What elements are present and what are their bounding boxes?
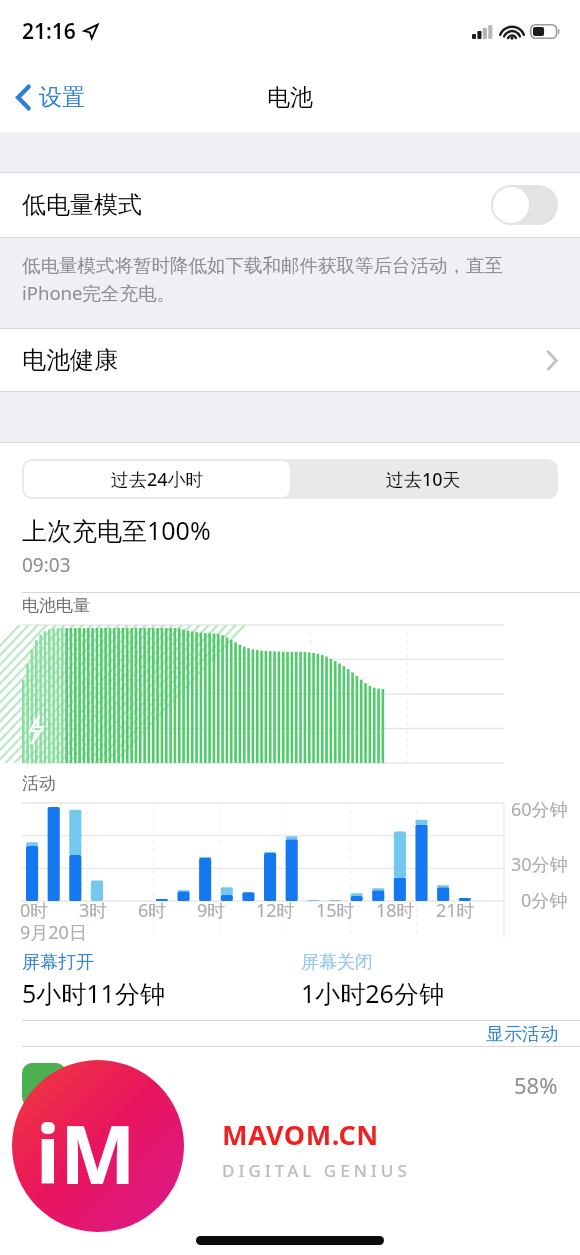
staticText: 活动	[22, 773, 56, 794]
staticText: 低电量模式将暂时降低如下载和邮件获取等后台活动，直至iPhone完全充电。	[22, 254, 532, 306]
staticText: 09:03	[22, 552, 71, 578]
staticText: iM	[36, 1098, 136, 1207]
staticText: 上次充电至100%	[22, 513, 211, 547]
button[interactable]: 低电量模式	[0, 173, 580, 237]
staticText: 5小时11分钟	[22, 976, 165, 1010]
staticText: 微信	[80, 1071, 126, 1100]
staticText: 15时	[316, 898, 355, 923]
button[interactable]: 设置	[0, 73, 99, 122]
staticText: 3时	[79, 898, 108, 923]
staticText: 过去10天	[386, 467, 461, 492]
staticText: 过去24小时	[111, 467, 204, 492]
staticText: 30分钟	[511, 852, 568, 877]
button[interactable]: 电池健康	[0, 329, 580, 391]
staticText: 12时	[256, 898, 295, 923]
staticText: 1小时26分钟	[301, 976, 444, 1010]
staticText: 电池健康	[22, 345, 118, 375]
staticText: 电池	[267, 83, 313, 112]
staticText: 9月20日	[20, 920, 87, 945]
staticText: 屏幕关闭	[301, 951, 373, 974]
button[interactable]: 过去10天	[290, 461, 556, 497]
staticText: 低电量模式	[22, 190, 142, 220]
button[interactable]: 过去24小时	[24, 461, 290, 497]
staticText: 21:16	[22, 17, 76, 46]
staticText: 屏幕打开	[22, 951, 94, 974]
staticText: 电池电量	[22, 595, 90, 616]
staticText: 6时	[138, 898, 167, 923]
other: 低电量模式 开关 关闭	[491, 185, 558, 225]
staticText: 0时	[20, 898, 49, 923]
staticText: 58%	[514, 1070, 558, 1100]
staticText: 设置	[39, 83, 85, 112]
staticText: 21时	[436, 898, 475, 923]
staticText: 60分钟	[511, 797, 568, 822]
staticText: 显示活动	[486, 1023, 558, 1046]
staticText: DIGITAL GENIUS	[222, 1159, 411, 1182]
staticText: MAVOM.CN	[222, 1116, 379, 1153]
staticText: 9时	[197, 898, 226, 923]
button[interactable]: 显示活动	[486, 1023, 558, 1046]
staticText: 0分钟	[521, 888, 568, 913]
staticText: 18时	[376, 898, 415, 923]
button[interactable]: 微信	[0, 1047, 580, 1123]
